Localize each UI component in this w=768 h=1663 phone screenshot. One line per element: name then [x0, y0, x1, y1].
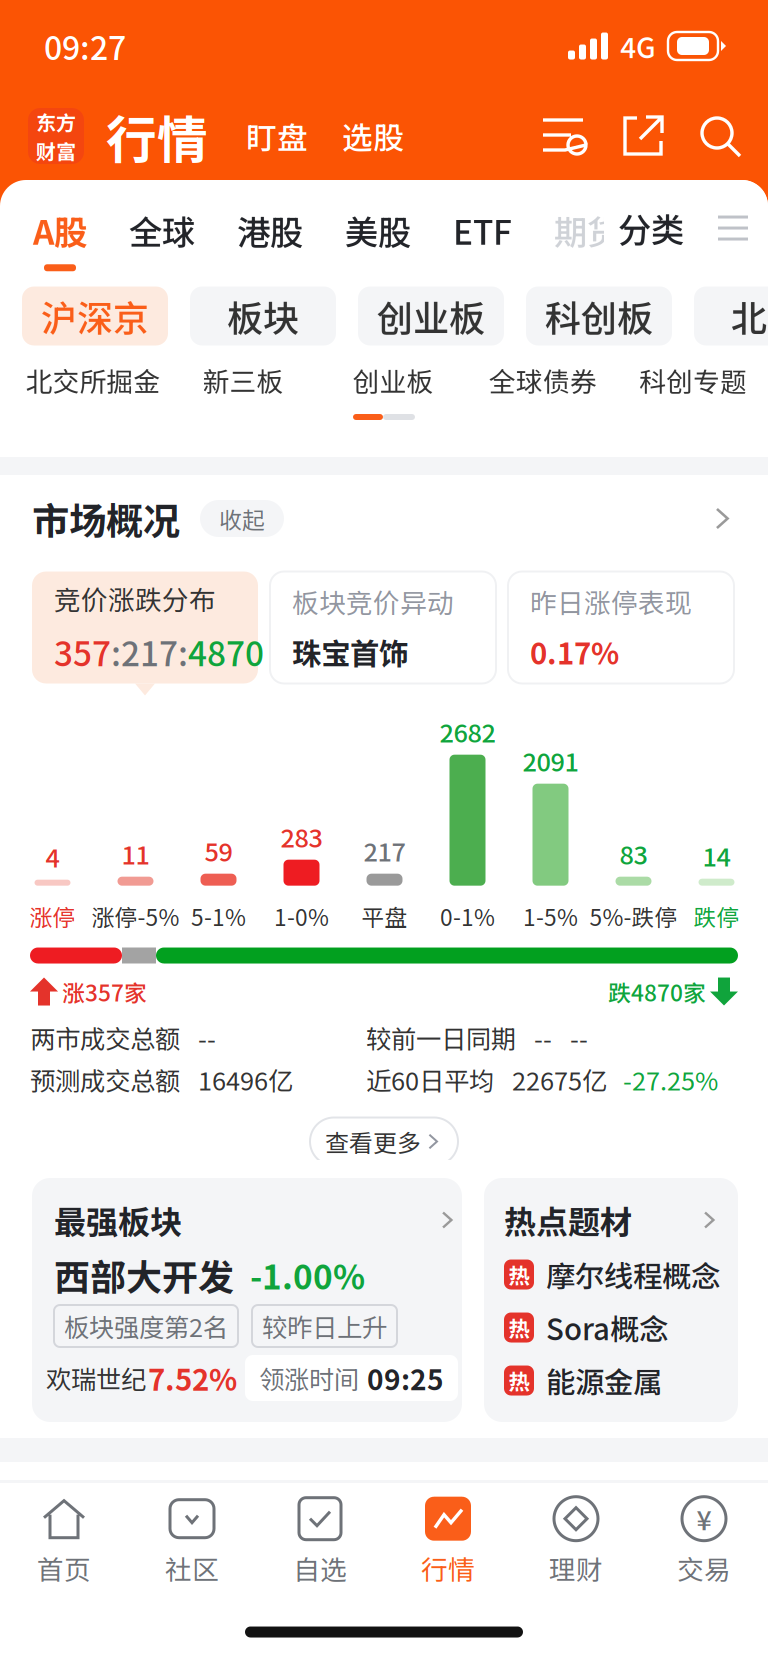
staticText: 分类	[618, 204, 684, 252]
staticText: 昨日涨停表现	[530, 582, 692, 621]
button[interactable]: ¥	[640, 1483, 768, 1601]
button[interactable]: ETF	[432, 180, 533, 276]
staticText: 新三板	[202, 361, 283, 399]
button[interactable]: 科创板	[526, 286, 672, 345]
staticText: 两市成交总额	[30, 1019, 180, 1056]
staticText: 09:25	[367, 1358, 444, 1398]
staticText: -27.25%	[623, 1061, 718, 1098]
staticText: 涨357家	[62, 975, 147, 1008]
staticText: 283	[280, 818, 322, 855]
staticText: 2682	[439, 713, 495, 750]
staticText: 东方	[36, 107, 76, 136]
button[interactable]: 全球	[108, 180, 216, 276]
staticText: 美股	[345, 206, 411, 254]
staticText: ¥	[696, 1499, 711, 1538]
button[interactable]: 分类	[604, 180, 698, 276]
staticText: 357	[54, 628, 111, 676]
staticText: 跌停	[693, 900, 739, 932]
staticText: 平盘	[361, 900, 407, 932]
staticText: 最强板块	[54, 1197, 182, 1243]
staticText: 选股	[342, 114, 404, 158]
staticText: 5-1%	[191, 900, 246, 932]
button[interactable]: 板块	[190, 286, 336, 345]
staticText: 欢瑞世纪	[46, 1360, 146, 1396]
staticText: 北交	[731, 290, 768, 342]
button[interactable]: 北交所掘金	[18, 356, 168, 404]
staticText: 理财	[549, 1549, 603, 1587]
button[interactable]: Filter settings	[541, 113, 589, 159]
staticText: 59	[204, 832, 232, 869]
button[interactable]: 收起	[180, 500, 284, 537]
button[interactable]: Share	[589, 113, 666, 159]
staticText: 1-0%	[274, 900, 329, 932]
staticText: 竞价涨跌分布	[54, 579, 216, 618]
staticText: 科创专题	[639, 361, 747, 399]
staticText: 行情	[421, 1549, 475, 1587]
staticText: --	[198, 1019, 216, 1056]
button[interactable]: 查看更多	[310, 1117, 458, 1165]
button[interactable]: 北交	[694, 286, 768, 345]
staticText: 创业板	[377, 290, 485, 342]
staticText: 板块	[227, 290, 299, 342]
staticText: 2091	[522, 742, 578, 779]
button[interactable]: 自选	[256, 1483, 384, 1601]
staticText: 板块强度第2名	[64, 1308, 228, 1344]
button[interactable]: 理财	[512, 1483, 640, 1601]
button[interactable]: 创业板	[318, 356, 468, 404]
button[interactable]: 港股	[216, 180, 324, 276]
staticText: 14	[702, 837, 730, 874]
staticText: A股	[33, 206, 87, 254]
staticText: 0-1%	[440, 900, 495, 932]
button[interactable]: 期货	[533, 180, 641, 276]
staticText: Sora概念	[546, 1306, 668, 1349]
staticText: 收起	[219, 502, 265, 535]
staticText: 西部大开发	[54, 1249, 234, 1301]
staticText: 4	[45, 838, 59, 875]
staticText: 港股	[237, 206, 303, 254]
button[interactable]: All categories	[698, 180, 768, 276]
staticText: 09:27	[44, 23, 126, 69]
staticText: 22675亿	[512, 1061, 607, 1098]
staticText: 能源金属	[546, 1359, 662, 1402]
button[interactable]: Search	[666, 113, 742, 159]
button[interactable]: A股	[12, 180, 108, 276]
button[interactable]: 科创专题	[618, 356, 768, 404]
button[interactable]: 美股	[324, 180, 432, 276]
button[interactable]: 最强板块	[32, 1178, 462, 1422]
staticText: 较前一日同期	[366, 1019, 516, 1056]
button[interactable]: 行情	[384, 1483, 512, 1601]
button[interactable]: 新三板	[168, 356, 318, 404]
staticText: 83	[619, 835, 647, 872]
button[interactable]: 社区	[128, 1483, 256, 1601]
button[interactable]: 创业板	[358, 286, 504, 345]
staticText: 1-5%	[523, 900, 578, 932]
staticText: -1.00%	[250, 1251, 365, 1299]
staticText: 涨停-5%	[91, 900, 179, 932]
button[interactable]: Expand market overview	[704, 498, 740, 538]
staticText: 热点题材	[504, 1197, 632, 1243]
staticText: 5%-跌停	[589, 900, 677, 932]
staticText: :	[178, 628, 188, 676]
staticText: 11	[121, 835, 149, 872]
staticText: 珠宝首饰	[292, 631, 408, 673]
staticText: 全球债券	[489, 361, 597, 399]
staticText: 领涨时间	[259, 1360, 359, 1396]
staticText: 北交所掘金	[25, 361, 160, 399]
staticText: 跌4870家	[608, 975, 706, 1008]
staticText: 全球	[129, 206, 195, 254]
staticText: 行情	[106, 99, 208, 173]
staticText: 较昨日上升	[262, 1308, 387, 1344]
staticText: 热	[508, 1365, 529, 1396]
staticText: 市场概况	[32, 491, 180, 546]
button[interactable]: 热点题材	[484, 1178, 738, 1422]
button[interactable]: 沪深京	[22, 286, 168, 345]
staticText: 热	[508, 1312, 529, 1343]
staticText: 财富	[36, 136, 76, 165]
button[interactable]: 首页	[0, 1483, 128, 1601]
staticText: -- --	[534, 1019, 588, 1056]
staticText: 科创板	[545, 290, 653, 342]
staticText: 涨停	[29, 900, 75, 932]
staticText: 交易	[677, 1549, 731, 1587]
button[interactable]: 全球债券	[468, 356, 618, 404]
staticText: 热	[508, 1259, 529, 1290]
